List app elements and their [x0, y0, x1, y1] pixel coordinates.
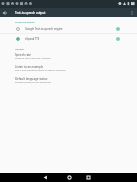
- staticText: Bosnian (Spain) is fully supported: [15, 81, 51, 84]
- staticText: Speech rate: [15, 53, 31, 57]
- button[interactable]: Navigate up: [0, 8, 10, 17]
- button[interactable]: Speech rate: [0, 51, 137, 63]
- button[interactable]: Recent apps: [83, 173, 93, 182]
- button[interactable]: Engine settings: [113, 24, 122, 33]
- staticText: Google Text-to-speech engine: [25, 27, 63, 31]
- staticText: Speed at which the text is spoken: [15, 57, 51, 60]
- staticText: Play a short demonstration of speech syn…: [15, 69, 66, 72]
- button[interactable]: Listen to an example: [0, 63, 137, 75]
- button[interactable]: Back: [40, 173, 50, 182]
- button[interactable]: eSpeak TTS: [0, 34, 137, 43]
- button[interactable]: Engine settings: [113, 34, 122, 43]
- staticText: General: [15, 47, 25, 50]
- staticText: Preferred engine: [15, 20, 35, 23]
- button[interactable]: More options: [127, 8, 137, 17]
- staticText: Default language status: [15, 77, 48, 81]
- button[interactable]: Default language status: [0, 75, 137, 87]
- staticText: eSpeak TTS: [25, 37, 40, 41]
- button[interactable]: Google Text-to-speech engine: [0, 24, 137, 33]
- staticText: Text-to-speech output: [15, 11, 46, 15]
- staticText: Listen to an example: [15, 65, 44, 69]
- button[interactable]: Home: [64, 173, 74, 182]
